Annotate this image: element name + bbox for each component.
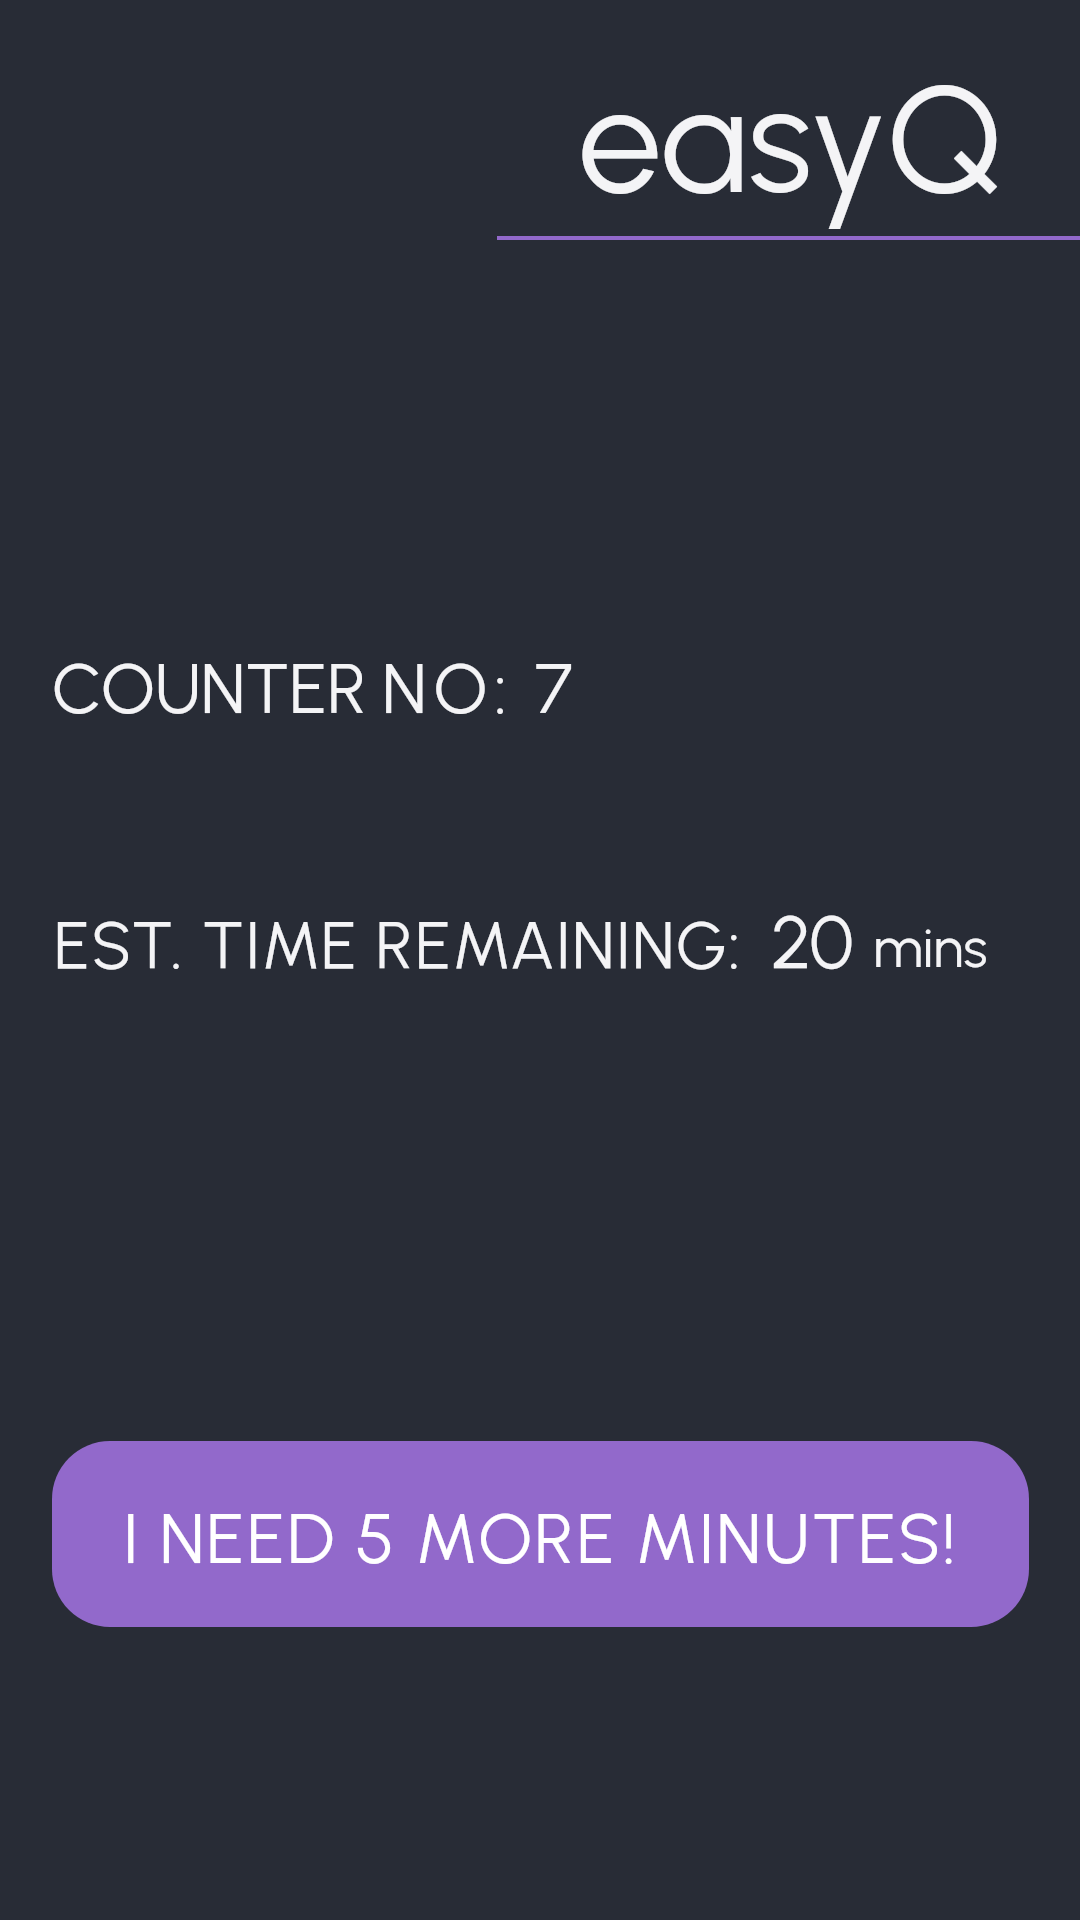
staticText: easyQ: [578, 49, 1004, 229]
staticText: 7: [535, 646, 573, 730]
staticText: mins: [873, 914, 988, 981]
staticText: I NEED 5 MORE MINUTES!: [123, 1496, 958, 1580]
staticText: EST. TIME REMAINING:: [54, 905, 743, 984]
staticText: COUNTER: [52, 646, 367, 730]
staticText: NO:: [382, 646, 514, 730]
staticText: 20: [771, 898, 854, 987]
button[interactable]: I NEED 5 MORE MINUTES!: [52, 1441, 1029, 1627]
